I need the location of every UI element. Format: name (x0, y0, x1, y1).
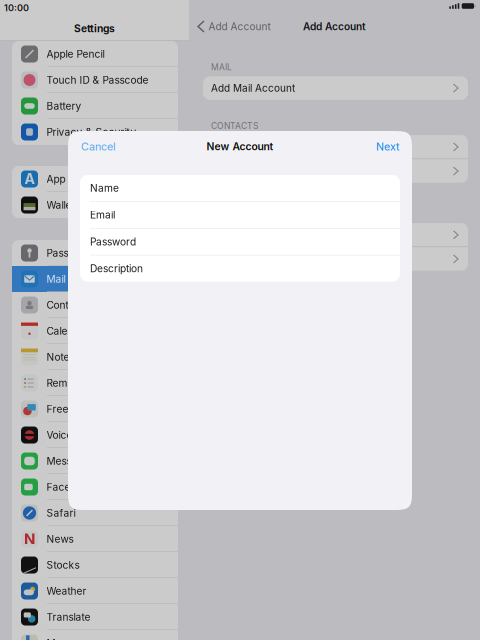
staticText: Voice Memos (46, 429, 110, 441)
button[interactable]: Add Calendar Account (203, 223, 468, 247)
staticText: New Account (206, 140, 273, 153)
button[interactable]: Add Subscribed Contacts (203, 159, 468, 183)
button[interactable]: Apple Pencil (12, 41, 178, 67)
staticText: Privacy & Security (46, 126, 136, 138)
staticText: Name (90, 182, 119, 194)
button[interactable]: Calendar (12, 318, 178, 344)
staticText: Notes (46, 351, 74, 363)
staticText: App Store (46, 173, 94, 185)
staticText: Freeform (46, 403, 90, 415)
staticText: Wallet (46, 199, 74, 211)
button[interactable]: Stocks (12, 552, 178, 578)
staticText: 10:00 (4, 2, 29, 13)
button[interactable]: Cancel (79, 135, 118, 158)
staticText: Next (376, 140, 399, 153)
staticText: Touch ID & Passcode (46, 74, 148, 86)
button[interactable]: FaceTime (12, 474, 178, 500)
staticText: Maps (46, 637, 72, 640)
staticText: Add Contacts Account (211, 141, 318, 153)
button[interactable]: N (12, 526, 178, 552)
staticText: Email (90, 209, 115, 221)
button[interactable]: Add Contacts Account (203, 135, 468, 159)
staticText: News (46, 533, 73, 545)
staticText: Cancel (81, 140, 116, 153)
staticText: A (24, 170, 34, 187)
button[interactable]: Next (374, 135, 401, 158)
staticText: MAIL (211, 62, 232, 72)
staticText: Mail (46, 273, 65, 285)
staticText: Passwords (46, 247, 97, 259)
staticText: Safari (46, 507, 75, 519)
button[interactable]: A (12, 166, 178, 192)
staticText: Calendar (46, 325, 89, 337)
staticText: Add Mail Account (211, 82, 295, 94)
staticText: Weather (46, 585, 86, 597)
staticText: Messages (46, 455, 94, 467)
staticText: Add Account (208, 20, 270, 33)
button[interactable]: Reminders (12, 370, 178, 396)
staticText: Settings (74, 22, 115, 35)
button[interactable]: Add Account (189, 16, 270, 37)
staticText: Add Subscribed Contacts (211, 165, 331, 177)
staticText: Stocks (46, 559, 79, 571)
staticText: FaceTime (46, 481, 93, 493)
button[interactable]: Add Mail Account (203, 76, 468, 100)
staticText: Password (90, 236, 136, 248)
button[interactable]: Messages (12, 448, 178, 474)
button[interactable]: Wallet (12, 192, 178, 218)
button[interactable]: Weather (12, 578, 178, 604)
staticText: Description (90, 262, 143, 275)
button[interactable]: Safari (12, 500, 178, 526)
button[interactable]: Battery (12, 93, 178, 119)
button[interactable]: Voice Memos (12, 422, 178, 448)
button[interactable]: Contacts (12, 292, 178, 318)
staticText: Battery (46, 100, 81, 112)
staticText: Translate (46, 611, 90, 623)
button[interactable]: Maps (12, 630, 178, 640)
staticText: Contacts (46, 299, 88, 311)
staticText: Reminders (46, 377, 96, 389)
button[interactable]: Notes (12, 344, 178, 370)
button[interactable]: Translate (12, 604, 178, 630)
staticText: Add Account (303, 20, 366, 33)
button[interactable]: Add Subscribed Calendar (203, 247, 468, 271)
staticText: N (24, 530, 35, 548)
button[interactable]: Privacy & Security (12, 119, 178, 145)
button[interactable]: Passwords (12, 240, 178, 266)
button[interactable]: Mail (12, 266, 178, 292)
staticText: Apple Pencil (46, 48, 104, 60)
button[interactable]: Touch ID & Passcode (12, 67, 178, 93)
staticText: CONTACTS (211, 121, 258, 131)
button[interactable]: Freeform (12, 396, 178, 422)
